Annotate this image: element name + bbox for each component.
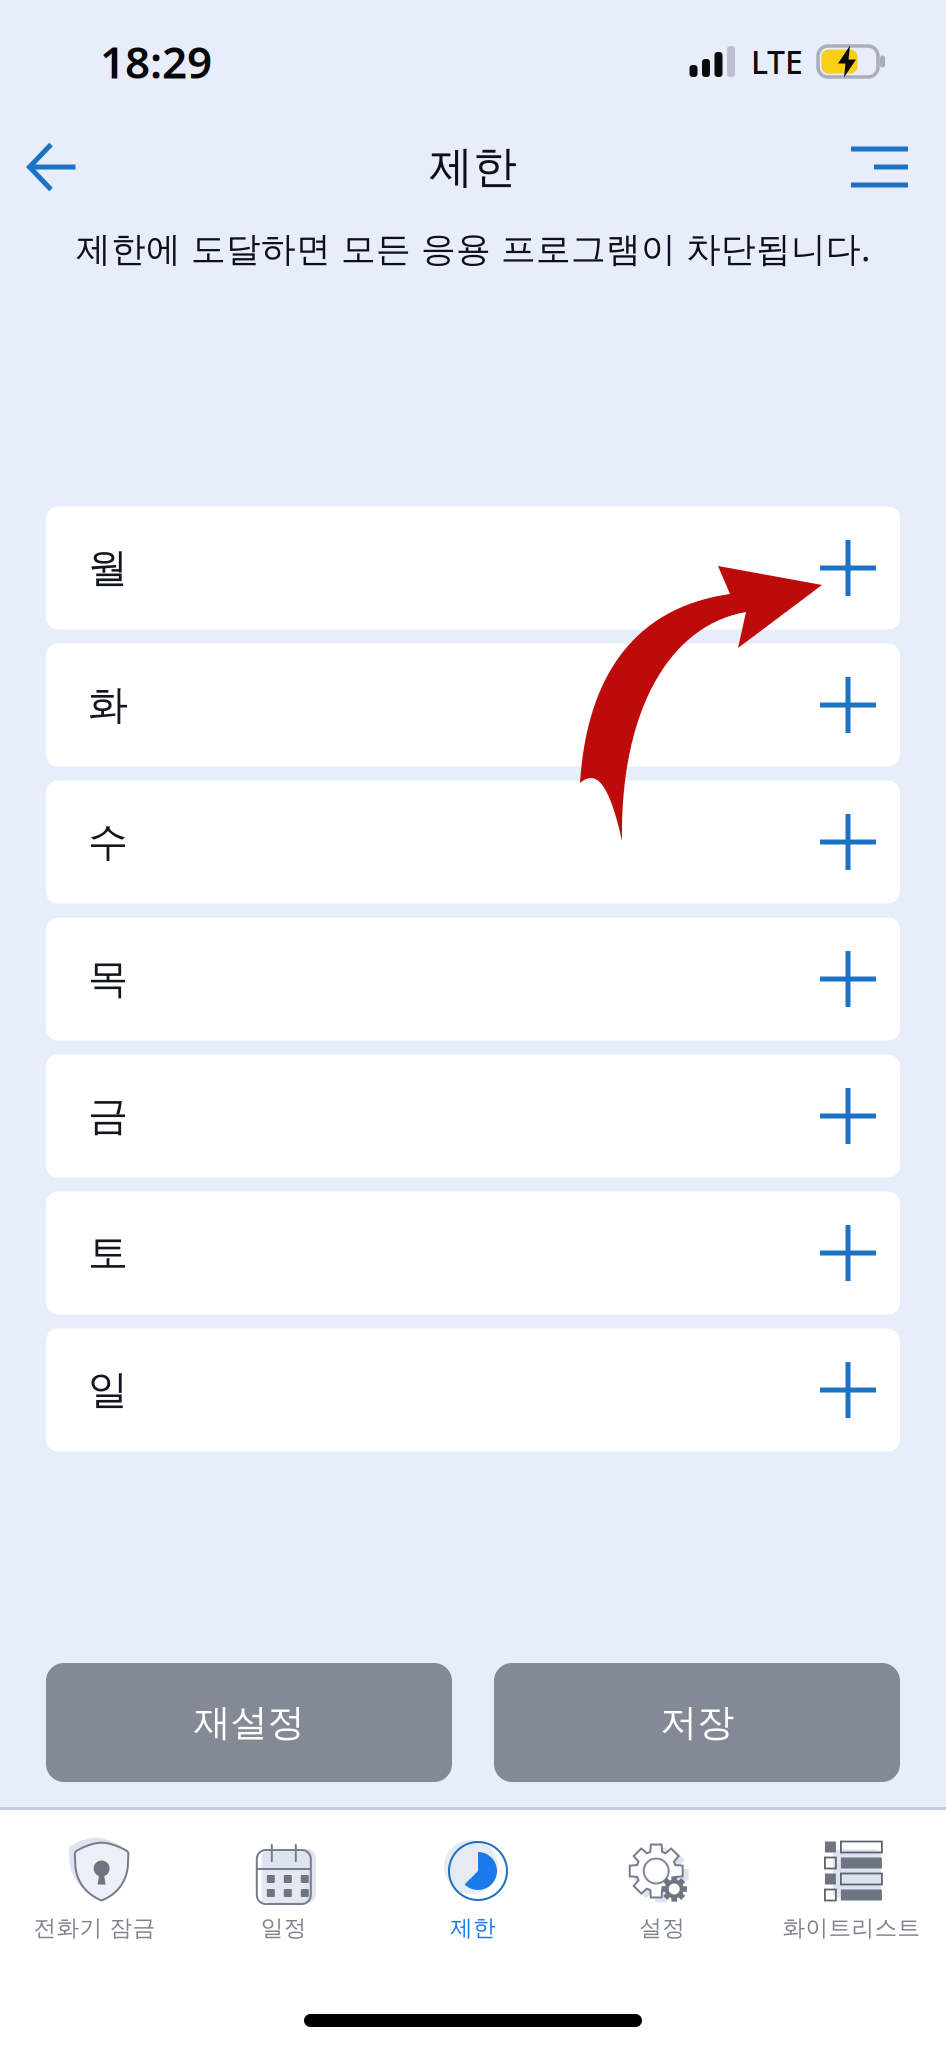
staticText: 18:29 <box>100 32 212 91</box>
staticText: LTE <box>751 40 803 83</box>
staticText: 재설정 <box>193 1700 304 1745</box>
button[interactable]: 화이트리스트 <box>757 1834 946 1951</box>
staticText: 일 <box>88 1365 128 1415</box>
staticText: 화 <box>88 680 128 730</box>
staticText: 화이트리스트 <box>782 1914 920 1942</box>
button[interactable]: Back <box>0 127 105 207</box>
staticText: 설정 <box>639 1914 685 1942</box>
button[interactable]: Menu <box>825 126 946 207</box>
staticText: 수 <box>88 817 128 867</box>
staticText: 토 <box>88 1228 128 1278</box>
staticText: 월 <box>88 543 128 593</box>
button[interactable]: 화 <box>46 643 900 766</box>
button[interactable]: 저장 <box>494 1663 900 1782</box>
staticText: 제한 <box>429 140 517 194</box>
staticText: 일정 <box>261 1914 307 1942</box>
staticText: 전화기 잠금 <box>34 1914 156 1942</box>
button[interactable]: 전화기 잠금 <box>0 1834 189 1951</box>
button[interactable]: 일 <box>46 1328 900 1451</box>
button[interactable]: 월 <box>46 506 900 629</box>
button[interactable]: 금 <box>46 1054 900 1177</box>
button[interactable]: 토 <box>46 1191 900 1314</box>
button[interactable]: 제한 <box>378 1834 568 1951</box>
button[interactable]: 설정 <box>568 1834 757 1951</box>
staticText: 목 <box>88 954 128 1004</box>
staticText: 제한 <box>450 1914 496 1942</box>
staticText: 금 <box>88 1091 128 1141</box>
button[interactable]: 목 <box>46 917 900 1040</box>
button[interactable]: 수 <box>46 780 900 903</box>
button[interactable]: 재설정 <box>46 1663 452 1782</box>
staticText: 저장 <box>660 1700 734 1745</box>
button[interactable]: 일정 <box>189 1834 378 1951</box>
staticText: 제한에 도달하면 모든 응용 프로그램이 차단됩니다. <box>76 225 870 271</box>
